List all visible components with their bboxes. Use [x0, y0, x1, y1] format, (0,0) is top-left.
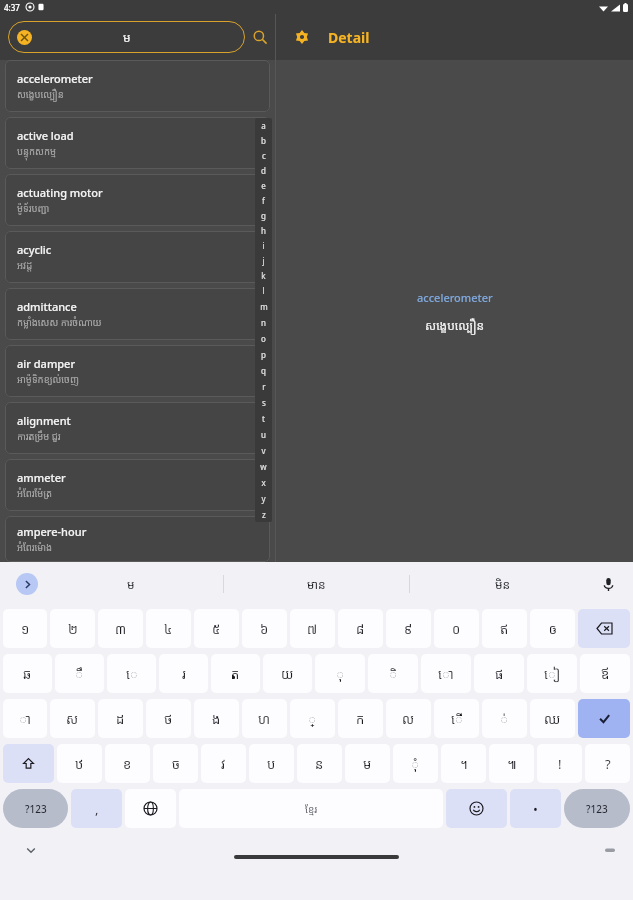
button[interactable]: ឲ: [530, 609, 575, 648]
button[interactable]: Change language: [125, 789, 176, 828]
button[interactable]: ់: [482, 699, 527, 738]
button[interactable]: p: [255, 346, 272, 362]
button[interactable]: i: [255, 238, 272, 253]
button[interactable]: ៕: [489, 744, 534, 783]
button[interactable]: ថ: [146, 699, 191, 738]
button[interactable]: ោ: [421, 654, 471, 693]
button[interactable]: រ: [159, 654, 208, 693]
button[interactable]: Enter: [578, 699, 630, 738]
button[interactable]: g: [255, 208, 272, 223]
button[interactable]: ឹ: [55, 654, 104, 693]
button[interactable]: f: [255, 193, 272, 208]
button[interactable]: ្: [290, 699, 335, 738]
button[interactable]: ប: [249, 744, 294, 783]
button[interactable]: Search: [245, 22, 275, 52]
button[interactable]: l: [255, 283, 272, 298]
button[interactable]: ?123: [3, 789, 68, 828]
button[interactable]: r: [255, 378, 272, 394]
button[interactable]: ឋ: [57, 744, 102, 783]
button[interactable]: ស: [50, 699, 95, 738]
button[interactable]: !: [537, 744, 582, 783]
button[interactable]: ុ: [315, 654, 365, 693]
button[interactable]: ដ: [98, 699, 143, 738]
button[interactable]: ល: [386, 699, 431, 738]
button[interactable]: t: [255, 410, 272, 426]
button[interactable]: មាន: [224, 562, 409, 606]
button[interactable]: េ: [107, 654, 156, 693]
button[interactable]: ឈ: [530, 699, 575, 738]
button[interactable]: s: [255, 394, 272, 410]
button[interactable]: Settings: [290, 25, 314, 49]
button[interactable]: ១: [3, 609, 47, 648]
button[interactable]: ៥: [194, 609, 239, 648]
button[interactable]: accelerometer: [5, 60, 270, 112]
button[interactable]: m: [255, 298, 272, 314]
button[interactable]: v: [255, 442, 272, 458]
button[interactable]: o: [255, 330, 272, 346]
button[interactable]: ច: [153, 744, 198, 783]
button[interactable]: ហ: [242, 699, 287, 738]
button[interactable]: ៤: [146, 609, 191, 648]
button[interactable]: ampere-hour: [5, 516, 270, 562]
button[interactable]: q: [255, 362, 272, 378]
button[interactable]: Shift: [3, 744, 54, 783]
button[interactable]: ៧: [290, 609, 335, 648]
button[interactable]: acyclic: [5, 231, 270, 283]
button[interactable]: j: [255, 253, 272, 268]
button[interactable]: actuating motor: [5, 174, 270, 226]
button[interactable]: alignment: [5, 402, 270, 454]
button[interactable]: ៨: [338, 609, 383, 648]
button[interactable]: ?: [585, 744, 630, 783]
button[interactable]: x: [255, 474, 272, 490]
button[interactable]: ត: [211, 654, 260, 693]
button[interactable]: active load: [5, 117, 270, 169]
button[interactable]: admittance: [5, 288, 270, 340]
button[interactable]: ិ: [368, 654, 418, 693]
button[interactable]: ៣: [98, 609, 143, 648]
button[interactable]: Backspace: [578, 609, 630, 648]
button[interactable]: n: [255, 314, 272, 330]
button[interactable]: ឆ: [3, 654, 52, 693]
button[interactable]: Emoji: [446, 789, 507, 828]
button[interactable]: c: [255, 148, 272, 163]
button[interactable]: ០: [434, 609, 479, 648]
button[interactable]: ឥ: [482, 609, 527, 648]
button[interactable]: h: [255, 223, 272, 238]
button[interactable]: ឪ: [580, 654, 630, 693]
button[interactable]: Clear search: [17, 30, 32, 45]
button[interactable]: មិន: [410, 562, 595, 606]
button[interactable]: b: [255, 133, 272, 148]
button[interactable]: ។: [441, 744, 486, 783]
button[interactable]: ,: [71, 789, 122, 828]
button[interactable]: w: [255, 458, 272, 474]
button[interactable]: ផ: [474, 654, 524, 693]
button[interactable]: Hide keyboard: [22, 841, 40, 859]
button[interactable]: ៦: [242, 609, 287, 648]
button[interactable]: k: [255, 268, 272, 283]
button[interactable]: ខ: [105, 744, 150, 783]
button[interactable]: ammeter: [5, 459, 270, 511]
button[interactable]: Keyboard settings: [601, 841, 619, 859]
button[interactable]: ើ: [434, 699, 479, 738]
button[interactable]: •: [510, 789, 561, 828]
button[interactable]: air damper: [5, 345, 270, 397]
button[interactable]: u: [255, 426, 272, 442]
button[interactable]: យ: [263, 654, 312, 693]
button[interactable]: e: [255, 178, 272, 193]
button[interactable]: a: [255, 118, 272, 133]
button[interactable]: ខ្មែរ: [179, 789, 443, 828]
button[interactable]: ៩: [386, 609, 431, 648]
button[interactable]: ៀ: [527, 654, 577, 693]
button[interactable]: d: [255, 163, 272, 178]
button[interactable]: ម: [345, 744, 390, 783]
button[interactable]: ន: [297, 744, 342, 783]
button[interactable]: ា: [3, 699, 47, 738]
button[interactable]: z: [255, 506, 272, 522]
button[interactable]: ុំ: [393, 744, 438, 783]
button[interactable]: វ: [201, 744, 246, 783]
button[interactable]: ក: [338, 699, 383, 738]
button[interactable]: ?123: [564, 789, 630, 828]
button[interactable]: Voice input: [595, 571, 621, 597]
button[interactable]: Clear search: [8, 21, 245, 53]
button[interactable]: y: [255, 490, 272, 506]
